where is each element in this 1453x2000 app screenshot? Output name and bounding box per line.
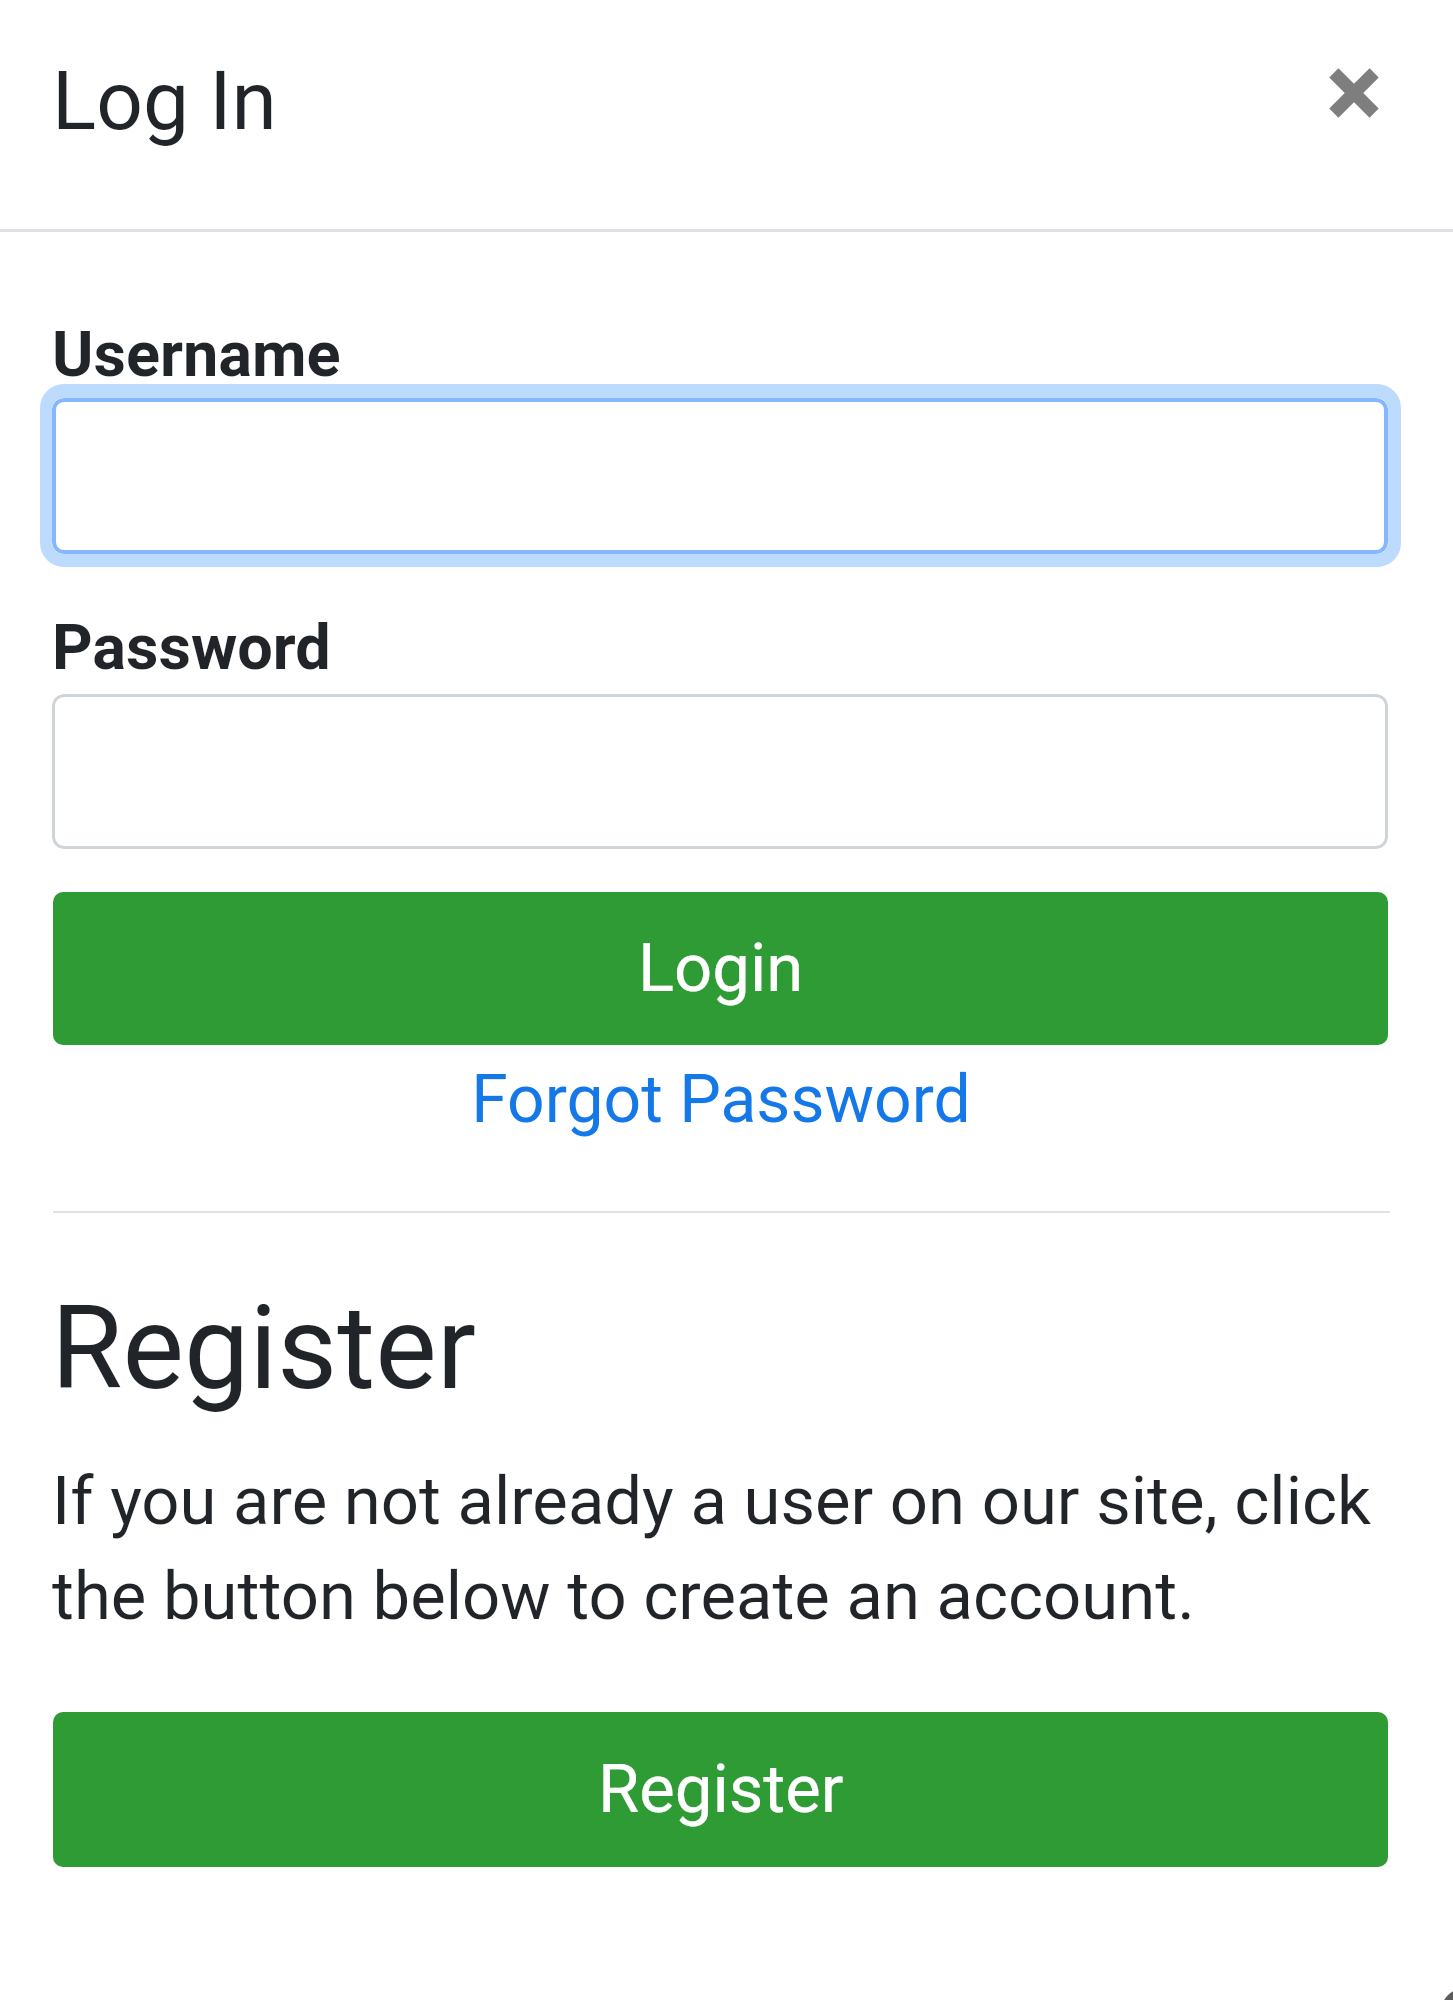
staticText: Username: [52, 318, 341, 392]
staticText: Register: [51, 1280, 476, 1416]
button[interactable]: Username: [52, 398, 1388, 554]
staticText: Register: [598, 1750, 844, 1829]
button[interactable]: Register: [53, 1712, 1388, 1867]
staticText: Log In: [52, 53, 277, 149]
button[interactable]: Login: [53, 892, 1388, 1045]
button[interactable]: Close: [1299, 38, 1409, 148]
staticText: Forgot Password: [471, 1061, 971, 1138]
staticText: If you are not already a user on our sit…: [52, 1462, 1397, 1636]
staticText: Password: [52, 611, 331, 685]
button[interactable]: Forgot Password: [53, 1061, 1388, 1147]
button[interactable]: Password: [52, 694, 1388, 849]
staticText: Login: [638, 929, 804, 1008]
